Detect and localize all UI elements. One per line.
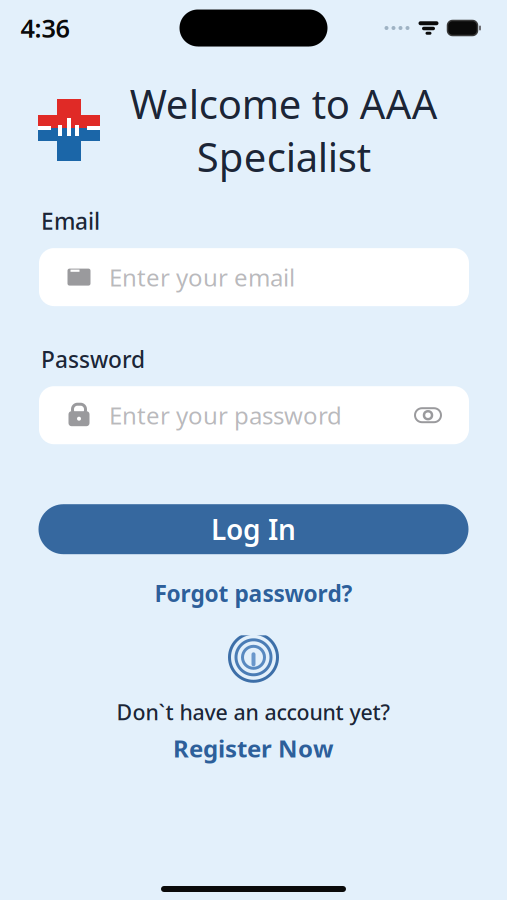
button[interactable]: Forgot password? bbox=[144, 554, 362, 608]
button[interactable]: Enter your email bbox=[39, 248, 469, 306]
staticText: Don`t have an account yet? bbox=[116, 698, 390, 726]
staticText: Forgot password? bbox=[154, 578, 352, 608]
staticText: Enter your email bbox=[109, 261, 295, 293]
staticText: Log In bbox=[211, 511, 296, 548]
staticText: Enter your password bbox=[109, 399, 342, 431]
staticText: Email bbox=[41, 206, 100, 236]
button[interactable]: Enter your password bbox=[39, 386, 469, 444]
staticText: Register Now bbox=[173, 732, 334, 764]
staticText: Welcome to AAA Specialist bbox=[129, 77, 437, 183]
button[interactable]: Sign in with fingerprint bbox=[227, 608, 279, 684]
staticText: Password bbox=[41, 344, 145, 374]
button[interactable]: Register Now bbox=[161, 730, 346, 766]
staticText: 4:36 bbox=[20, 11, 69, 45]
button[interactable]: Log In bbox=[38, 504, 468, 554]
